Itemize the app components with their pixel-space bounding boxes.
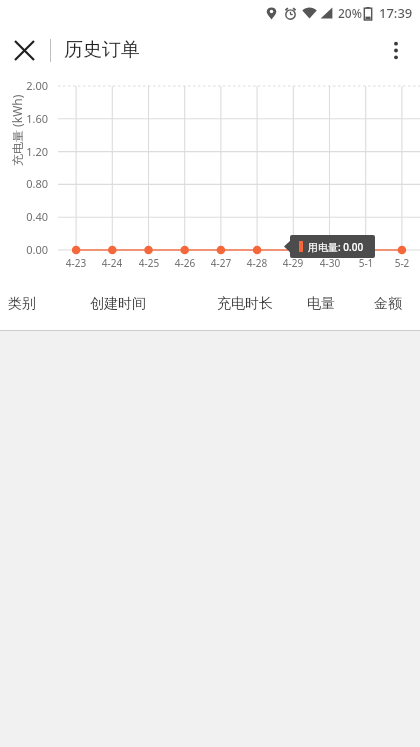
staticText: 0.80 [16,176,48,191]
staticText: 充电时长 [217,295,273,313]
button[interactable]: 创建时间 [90,295,146,313]
staticText: 2.00 [16,78,48,93]
staticText: 类别 [8,295,36,313]
staticText: 4-25 [132,256,166,270]
staticText: 历史订单 [64,38,140,62]
staticText: 17:39 [379,4,413,22]
staticText: 4-30 [313,256,347,270]
staticText: 用电量: 0.00 [308,240,364,254]
staticText: 5-2 [385,256,419,270]
staticText: 0.40 [16,209,48,224]
staticText: 20% [338,5,362,21]
button[interactable]: 充电时长 [217,295,273,313]
staticText: 电量 [307,295,335,313]
staticText: 4-28 [240,256,274,270]
staticText: 充电量 (kWh) [9,94,25,166]
button[interactable]: More options [375,29,417,71]
staticText: 1.60 [16,111,48,126]
staticText: 4-24 [95,256,129,270]
button[interactable]: 电量 [307,295,335,313]
staticText: 5-1 [349,256,383,270]
staticText: 4-29 [276,256,310,270]
button[interactable]: 金额 [374,295,402,313]
staticText: 4-27 [204,256,238,270]
staticText: 1.20 [16,144,48,159]
staticText: 创建时间 [90,295,146,313]
button[interactable]: 类别 [8,295,36,313]
staticText: 0.00 [16,242,48,257]
staticText: 金额 [374,295,402,313]
staticText: 4-26 [168,256,202,270]
staticText: 4-23 [59,256,93,270]
button[interactable]: Close [5,31,44,70]
